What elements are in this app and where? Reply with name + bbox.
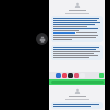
button[interactable]: App 4 bbox=[74, 73, 79, 78]
button[interactable]: App 3 bbox=[68, 73, 73, 78]
button[interactable]: Account bbox=[36, 33, 48, 45]
button[interactable] bbox=[51, 45, 103, 60]
button[interactable] bbox=[51, 102, 103, 109]
button[interactable] bbox=[49, 79, 105, 85]
button[interactable]: Send bbox=[99, 73, 104, 78]
button[interactable] bbox=[51, 16, 103, 42]
button[interactable]: App 1 bbox=[56, 73, 61, 78]
button[interactable]: App 2 bbox=[62, 73, 67, 78]
